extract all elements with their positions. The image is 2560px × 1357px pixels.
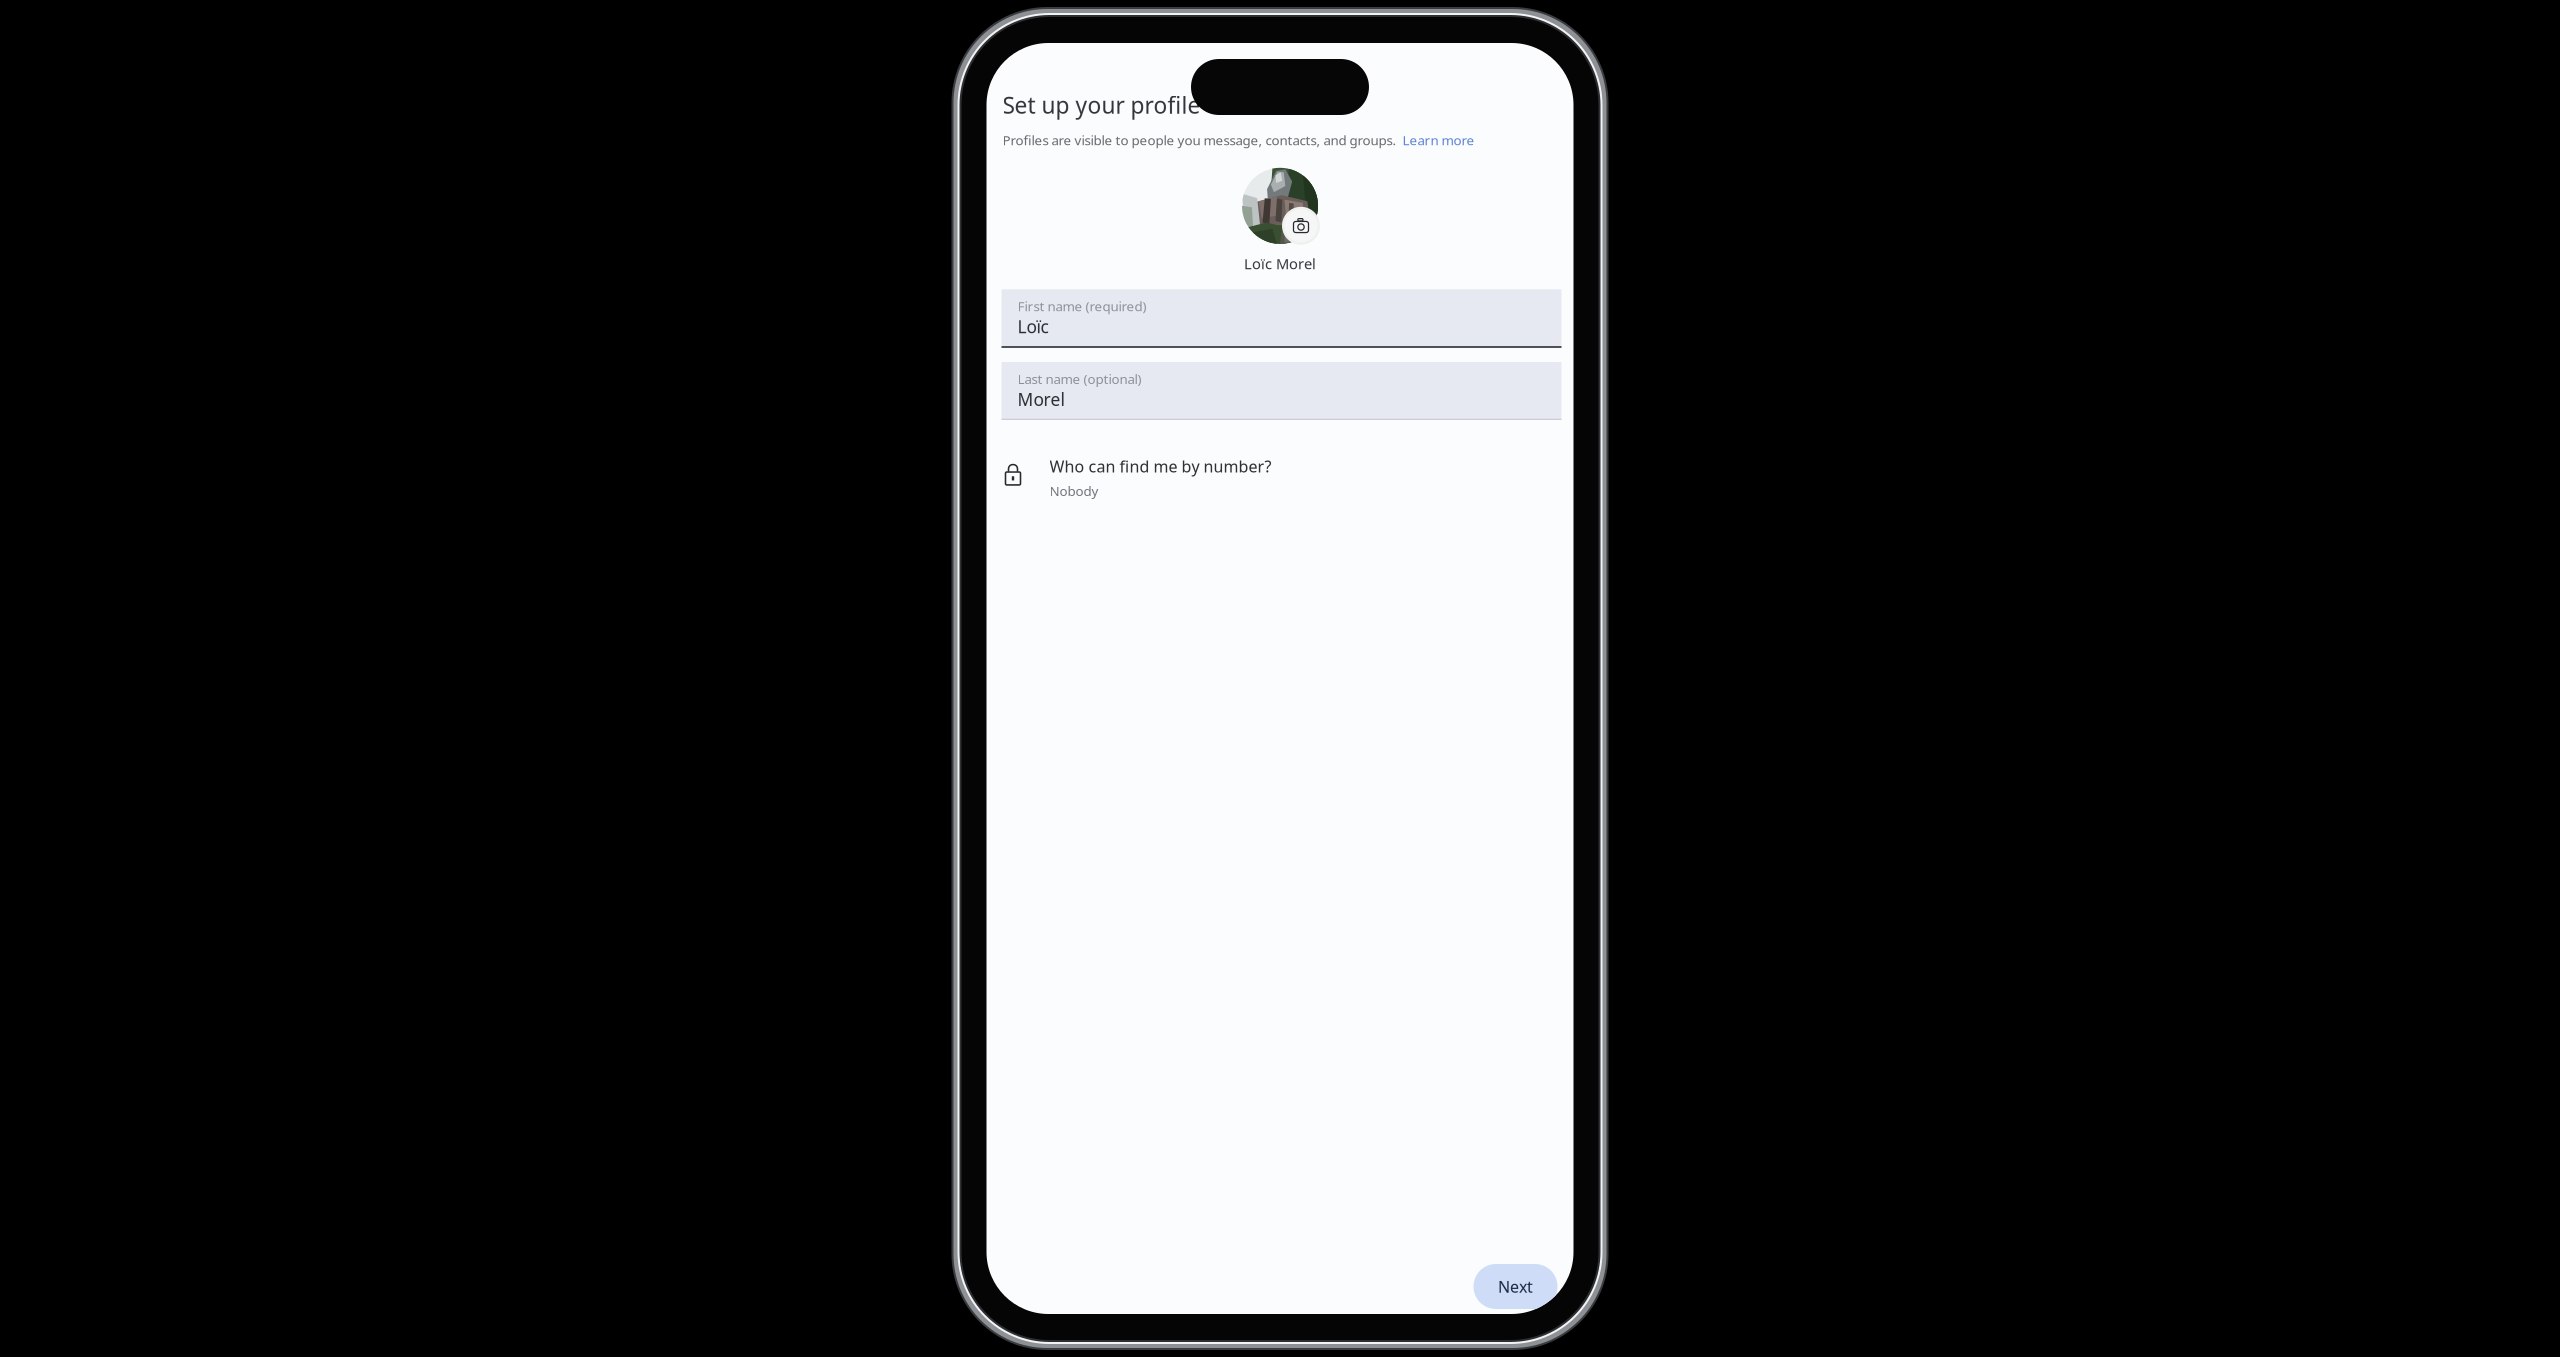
button[interactable]: Last name (optional) [1001, 362, 1561, 420]
button[interactable]: First name (required) [1001, 289, 1561, 348]
button[interactable]: Learn more [1396, 131, 1474, 149]
button[interactable]: Change profile photo [1242, 168, 1318, 244]
staticText: First name (required) [1017, 297, 1146, 315]
button[interactable]: Next [1473, 1264, 1557, 1309]
staticText: Nobody [1049, 482, 1098, 500]
staticText: Profiles are visible to people you messa… [1002, 131, 1396, 149]
staticText: Next [1498, 1276, 1533, 1297]
staticText: Morel [1017, 388, 1064, 411]
staticText: Loïc [1017, 315, 1048, 338]
staticText: Loïc Morel [1244, 254, 1316, 273]
staticText: Set up your profile [1002, 90, 1200, 120]
staticText: Learn more [1396, 131, 1474, 149]
button[interactable]: Who can find me by number? [986, 447, 1573, 509]
staticText: Who can find me by number? [1049, 456, 1271, 477]
staticText: Last name (optional) [1017, 370, 1141, 388]
